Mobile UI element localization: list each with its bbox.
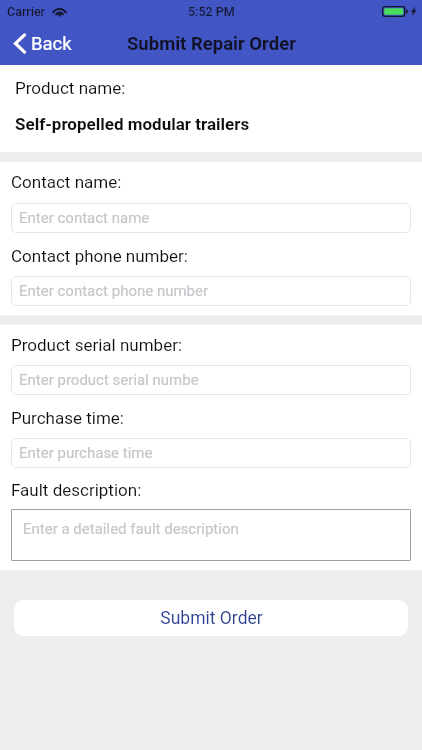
staticText: Fault description: <box>11 480 142 500</box>
button[interactable]: Submit Order <box>14 600 408 636</box>
staticText: Purchase time: <box>11 408 124 428</box>
staticText: Contact name: <box>11 172 122 192</box>
button[interactable]: Enter product serial numbe <box>11 365 411 395</box>
staticText: Enter product serial numbe <box>19 371 199 389</box>
staticText: Product serial number: <box>11 335 183 355</box>
button[interactable]: Enter contact name <box>11 203 411 233</box>
button[interactable]: Enter purchase time <box>11 438 411 468</box>
staticText: Product name: <box>15 78 126 98</box>
staticText: Submit Order <box>160 608 263 629</box>
staticText: Carrier <box>7 4 46 19</box>
button[interactable]: Enter a detailed fault description <box>11 509 411 561</box>
staticText: Enter a detailed fault description <box>23 520 239 538</box>
staticText: Enter contact name <box>19 209 150 227</box>
button[interactable]: Back <box>0 27 86 61</box>
staticText: Submit Repair Order <box>127 33 296 55</box>
staticText: Back <box>31 33 72 55</box>
staticText: Enter purchase time <box>19 444 153 462</box>
staticText: Self-propelled modular trailers <box>15 114 250 134</box>
button[interactable]: Enter contact phone number <box>11 276 411 306</box>
staticText: 5:52 PM <box>188 4 235 19</box>
staticText: Enter contact phone number <box>19 282 209 300</box>
staticText: Contact phone number: <box>11 246 188 266</box>
